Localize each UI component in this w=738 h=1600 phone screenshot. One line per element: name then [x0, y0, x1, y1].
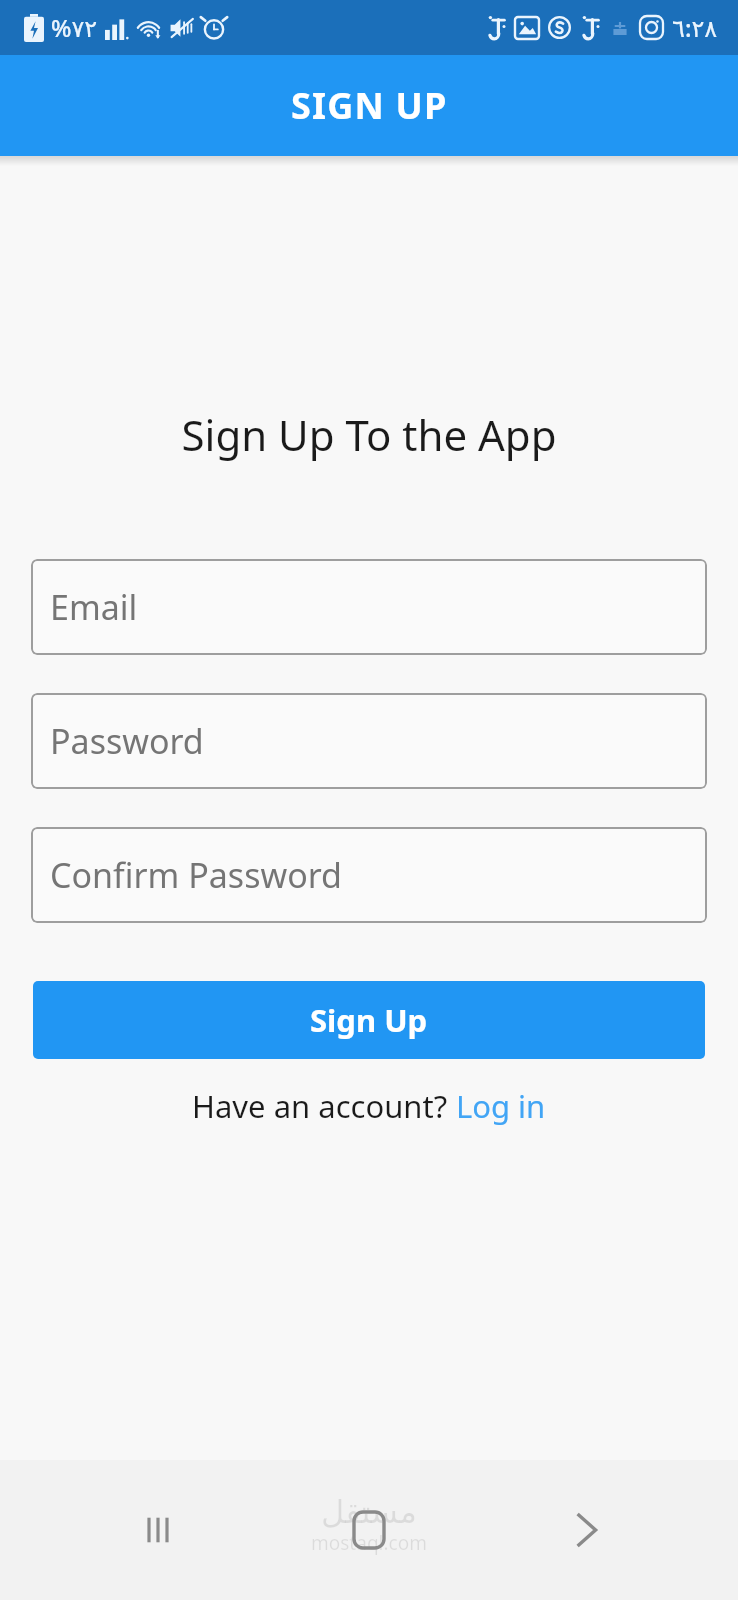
staticText: Sign Up — [310, 999, 428, 1041]
staticText: Confirm Password — [50, 852, 342, 898]
staticText: %٧٢ — [51, 11, 98, 44]
button[interactable]: Recent apps — [128, 1500, 188, 1560]
button[interactable]: Log in — [456, 1085, 546, 1127]
button[interactable]: Home — [337, 1498, 401, 1562]
button[interactable]: Password — [31, 693, 707, 789]
button[interactable]: Email — [31, 559, 707, 655]
staticText: Sign Up To the App — [181, 406, 557, 463]
staticText: Log in — [456, 1085, 546, 1127]
button[interactable]: Sign Up — [33, 981, 705, 1059]
staticText: مستقل — [321, 1493, 417, 1530]
button[interactable]: Back — [556, 1500, 616, 1560]
staticText: Email — [50, 584, 138, 630]
button[interactable]: Confirm Password — [31, 827, 707, 923]
staticText: SIGN UP — [291, 81, 448, 130]
staticText: mostaql.com — [311, 1530, 427, 1556]
staticText: Have an account? — [192, 1085, 456, 1127]
staticText: Password — [50, 718, 204, 764]
staticText: ٦:٢٨ — [672, 11, 718, 44]
